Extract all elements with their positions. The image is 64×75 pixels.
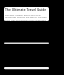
staticText: Discover hidden gems and local favourite… — [5, 13, 48, 21]
button[interactable]: The Ultimate Travel Guide — [4, 7, 49, 21]
staticText: The Ultimate Travel Guide — [5, 8, 47, 12]
button[interactable]: Progress — [4, 41, 49, 45]
button[interactable]: Action — [4, 66, 49, 71]
